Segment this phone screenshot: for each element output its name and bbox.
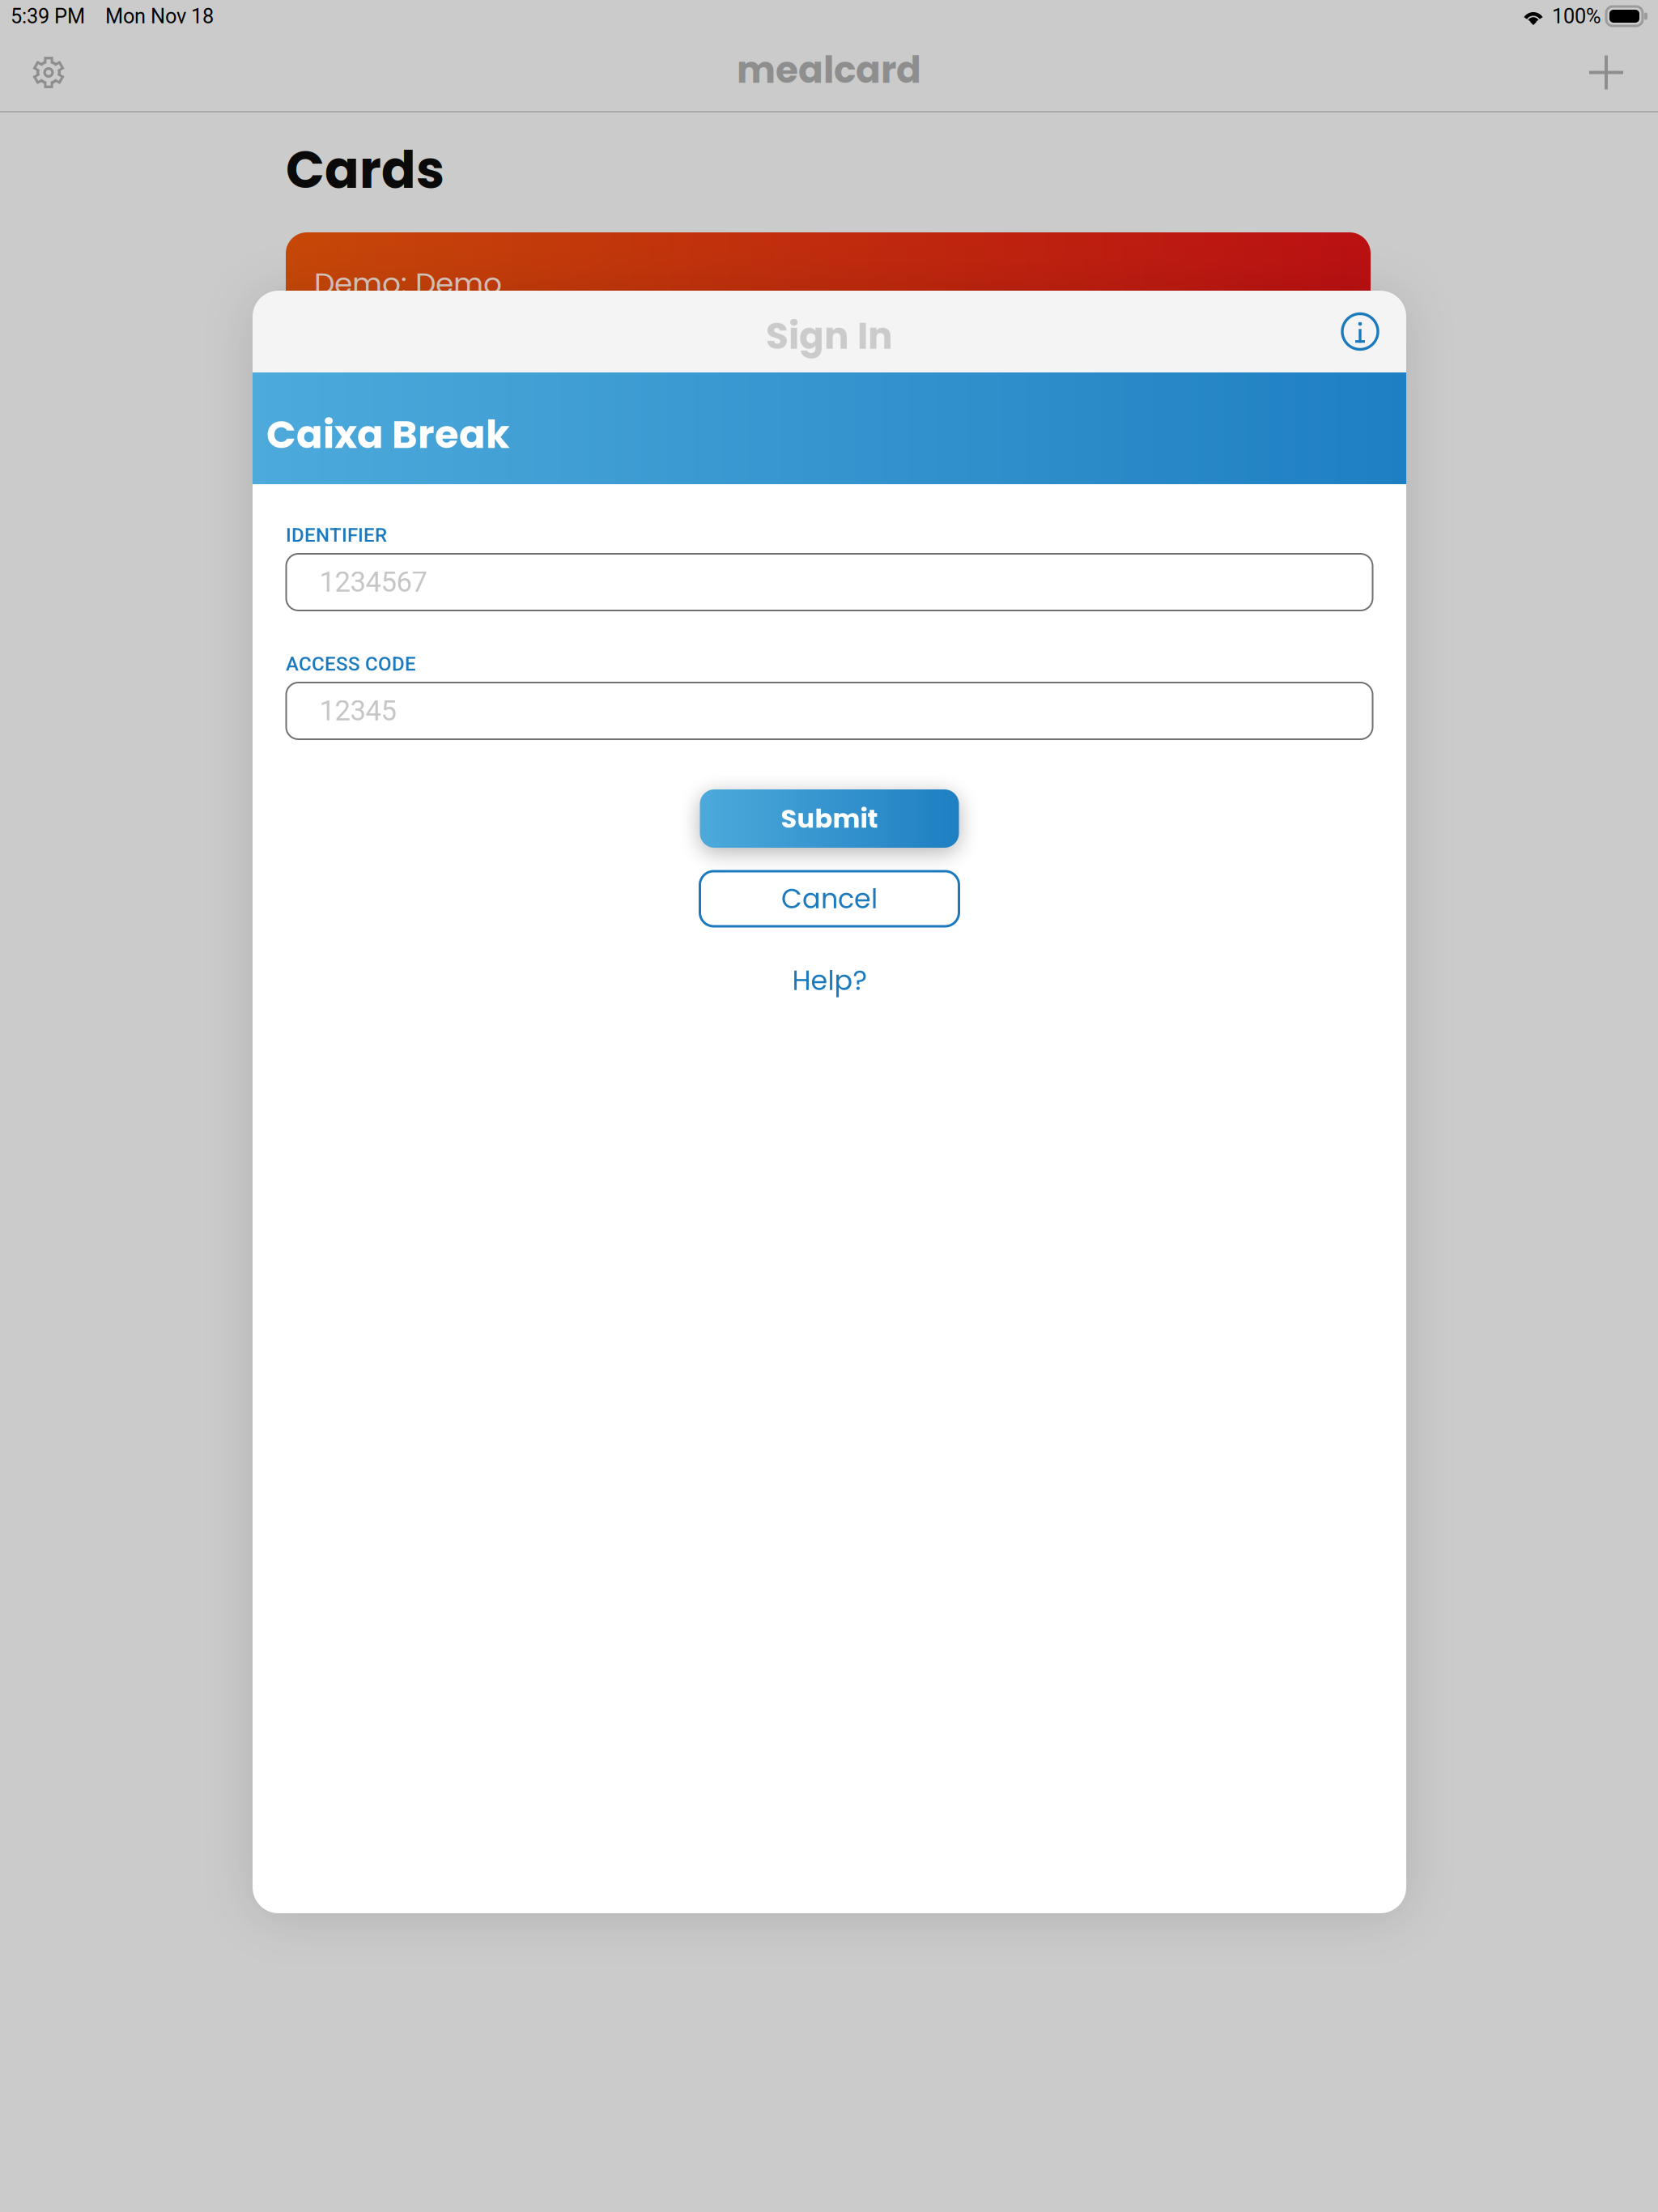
staticText: 1234567 <box>319 566 427 599</box>
staticText: Cards <box>286 134 444 205</box>
staticText: Help? <box>792 962 867 999</box>
staticText: ACCESS CODE <box>286 653 416 675</box>
staticText: Mon Nov 18 <box>105 4 214 28</box>
staticText: 5:39 PM <box>11 4 85 28</box>
staticText: Cancel <box>781 880 878 918</box>
button[interactable]: Add card <box>1581 47 1631 98</box>
staticText: Demo: Demo <box>314 263 502 304</box>
staticText: 100% <box>1552 4 1601 28</box>
staticText: Submit <box>781 800 878 837</box>
button[interactable]: Settings <box>23 47 74 98</box>
staticText: 12345 <box>319 694 396 727</box>
staticText: Caixa Break <box>266 407 510 462</box>
button[interactable]: Submit <box>700 789 959 848</box>
staticText: IDENTIFIER <box>286 524 387 547</box>
button[interactable]: Help? <box>700 964 959 997</box>
staticText: Sign In <box>766 310 893 362</box>
staticText: mealcard <box>737 44 921 96</box>
button[interactable]: Information <box>1327 298 1393 365</box>
button[interactable]: Cancel <box>700 871 959 926</box>
